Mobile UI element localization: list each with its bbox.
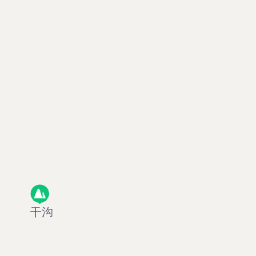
staticText: 干沟 [30, 205, 53, 219]
button[interactable]: 干沟 [25, 183, 55, 219]
other: Map [0, 0, 256, 256]
